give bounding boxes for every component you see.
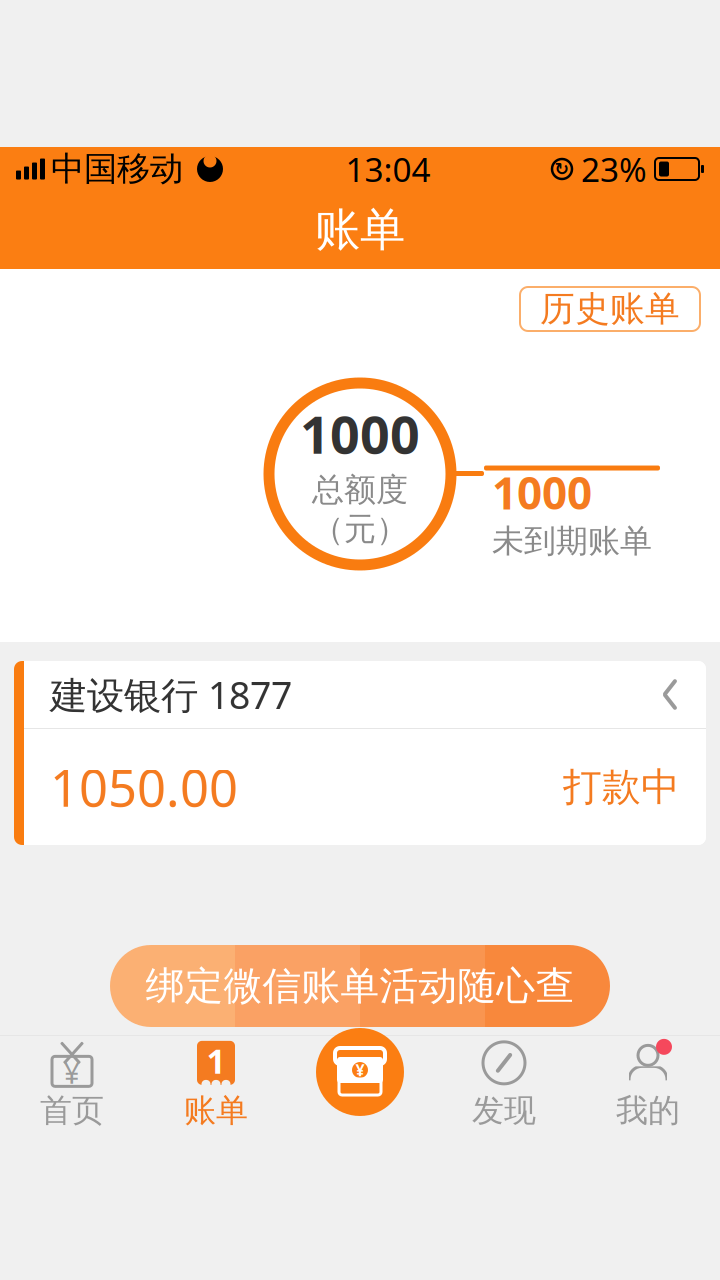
staticText: 首页	[40, 1091, 104, 1130]
staticText: 1	[206, 1039, 225, 1083]
staticText: 绑定微信账单活动随心查	[145, 962, 574, 1010]
staticText: 总额度（元）	[312, 470, 408, 549]
staticText: 13:04	[345, 147, 430, 191]
staticText: ↻	[554, 159, 569, 179]
staticText: 1000	[300, 399, 420, 468]
staticText: ¥	[355, 1059, 364, 1081]
staticText: 建设银行 1877	[50, 670, 292, 719]
button[interactable]: 1	[144, 1036, 288, 1133]
staticText: 23%	[581, 147, 647, 191]
button[interactable]: 建设银行 1877	[14, 661, 706, 845]
staticText: 未到期账单	[492, 521, 652, 561]
button[interactable]: 绑定微信账单活动随心查	[110, 945, 610, 1027]
button[interactable]: ¥	[0, 1036, 144, 1133]
staticText: 1000	[492, 463, 592, 521]
staticText: 账单	[184, 1091, 248, 1130]
button[interactable]: 取现	[316, 1028, 404, 1116]
staticText: 发现	[472, 1091, 536, 1130]
button[interactable]: 我的	[576, 1036, 720, 1133]
staticText: 1050.00	[50, 753, 238, 821]
staticText: 历史账单	[540, 288, 680, 330]
staticText: 账单	[315, 202, 405, 258]
staticText: 中国移动	[51, 148, 183, 189]
staticText: 我的	[616, 1091, 680, 1130]
staticText: ¥	[63, 1051, 81, 1092]
button[interactable]: 发现	[432, 1036, 576, 1133]
button[interactable]: 历史账单	[520, 287, 700, 331]
staticText: 打款中	[563, 763, 680, 811]
